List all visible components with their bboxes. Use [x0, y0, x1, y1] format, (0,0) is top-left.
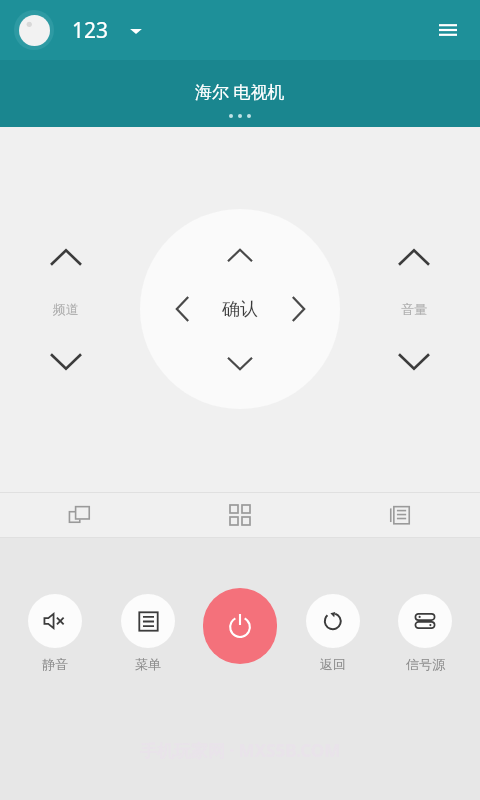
button[interactable]: Right: [278, 274, 318, 344]
button[interactable]: 音量 up: [366, 227, 462, 287]
button[interactable]: Picture in picture: [0, 493, 160, 537]
button[interactable]: Down: [205, 343, 275, 383]
button[interactable]: 频道 down: [18, 331, 114, 391]
button[interactable]: 频道 up: [18, 227, 114, 287]
button[interactable]: [398, 594, 452, 648]
button[interactable]: [28, 594, 82, 648]
staticText: 静音: [42, 656, 68, 672]
button[interactable]: 音量 down: [366, 331, 462, 391]
button[interactable]: 确认: [198, 267, 282, 351]
staticText: 返回: [320, 656, 346, 672]
staticText: 音量: [401, 301, 427, 317]
button[interactable]: [121, 594, 175, 648]
button[interactable]: Apps grid: [160, 493, 320, 537]
button[interactable]: Menu: [424, 6, 472, 54]
staticText: 频道: [53, 301, 79, 317]
staticText: 确认: [222, 298, 258, 321]
staticText: 123: [72, 16, 109, 45]
button[interactable]: Profile: [14, 10, 54, 50]
staticText: 信号源: [406, 656, 445, 672]
button[interactable]: 频道: [18, 287, 114, 331]
staticText: 海尔 电视机: [195, 80, 285, 103]
button[interactable]: 音量: [366, 287, 462, 331]
button[interactable]: Power: [203, 588, 277, 664]
staticText: 菜单: [135, 656, 161, 672]
button[interactable]: Up: [205, 235, 275, 275]
button[interactable]: 海尔 电视机: [0, 60, 480, 127]
button[interactable]: Left: [162, 274, 202, 344]
button[interactable]: Program list: [320, 493, 480, 537]
button[interactable]: [306, 594, 360, 648]
button[interactable]: 123: [72, 16, 143, 45]
